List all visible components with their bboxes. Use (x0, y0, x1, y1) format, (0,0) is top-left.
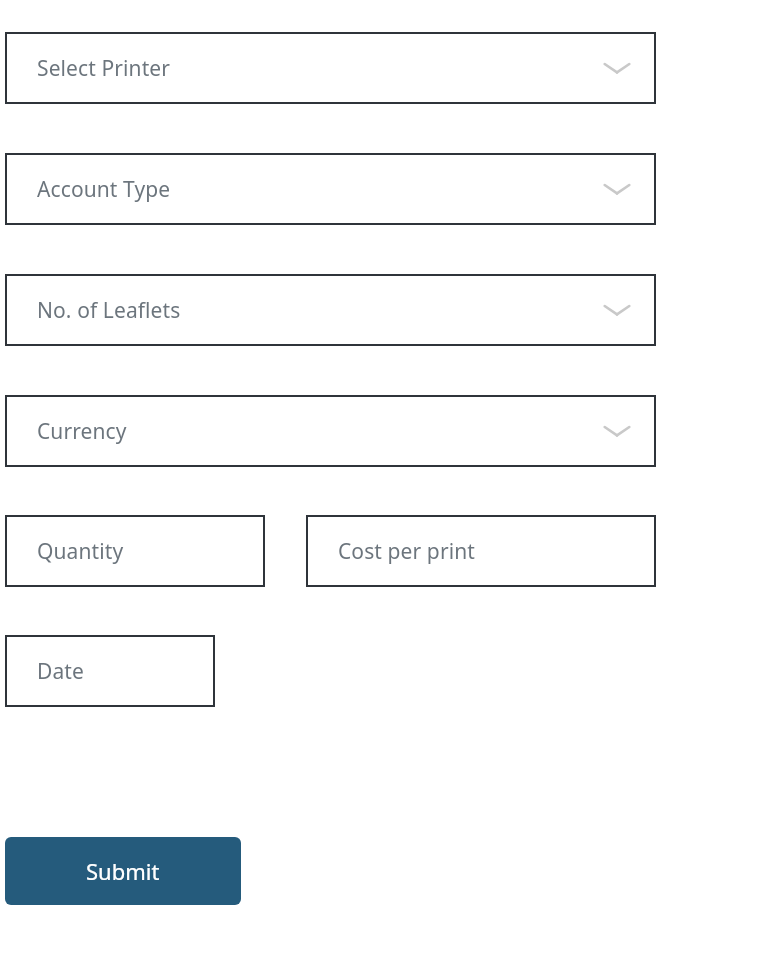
staticText: Select Printer (37, 54, 171, 83)
button[interactable]: Select Printer (5, 32, 656, 104)
button[interactable]: Currency (5, 395, 656, 467)
button[interactable]: Account Type (5, 153, 656, 225)
staticText: Date (37, 657, 84, 686)
staticText: Account Type (37, 175, 171, 204)
button[interactable]: Cost per print (306, 515, 656, 587)
button[interactable]: No. of Leaflets (5, 274, 656, 346)
staticText: Submit (86, 856, 160, 886)
staticText: Cost per print (338, 537, 475, 566)
staticText: Currency (37, 417, 127, 446)
staticText: Quantity (37, 537, 124, 566)
staticText: No. of Leaflets (37, 296, 181, 325)
button[interactable]: Submit (5, 837, 241, 905)
button[interactable]: Date (5, 635, 215, 707)
button[interactable]: Quantity (5, 515, 265, 587)
